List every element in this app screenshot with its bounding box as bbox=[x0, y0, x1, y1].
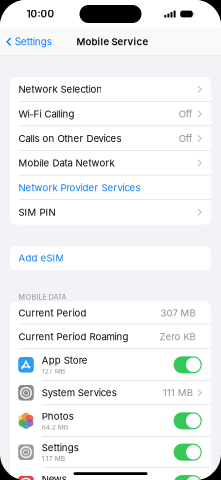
button[interactable]: Network Selection bbox=[10, 77, 211, 102]
button[interactable]: Mobile Data Network bbox=[10, 151, 211, 175]
staticText: Network Provider Services bbox=[18, 182, 140, 193]
staticText: Mobile Service bbox=[76, 36, 148, 47]
staticText: Photos bbox=[42, 410, 74, 422]
staticText: Settings bbox=[42, 442, 79, 453]
button[interactable]: Settings bbox=[0, 28, 52, 55]
button[interactable]: Settings bbox=[10, 436, 211, 468]
staticText: SIM PIN bbox=[18, 206, 55, 218]
staticText: Mobile Data Network bbox=[18, 157, 114, 169]
button[interactable]: Add eSIM bbox=[10, 246, 211, 270]
button[interactable]: Photos bbox=[10, 405, 211, 436]
staticText: Calls on Other Devices bbox=[18, 133, 121, 144]
button[interactable]: Network Provider Services bbox=[10, 175, 211, 200]
button[interactable]: SIM PIN bbox=[10, 200, 211, 225]
button[interactable]: Current Period bbox=[10, 302, 211, 324]
staticText: 64.2 MB bbox=[42, 423, 68, 431]
staticText: Add eSIM bbox=[18, 252, 64, 264]
staticText: 307 MB bbox=[160, 307, 195, 319]
staticText: System Services bbox=[42, 387, 117, 399]
staticText: 10:00 bbox=[26, 8, 54, 20]
staticText: 111 MB bbox=[163, 387, 193, 399]
staticText: Settings bbox=[15, 36, 52, 48]
staticText: Off bbox=[179, 108, 193, 120]
staticText: App Store bbox=[42, 354, 88, 366]
button[interactable]: Wi-Fi Calling bbox=[10, 102, 211, 126]
staticText: MOBILE DATA bbox=[18, 293, 66, 302]
staticText: 1.17 MB bbox=[42, 454, 65, 463]
button[interactable]: Calls on Other Devices bbox=[10, 126, 211, 151]
button[interactable]: News bbox=[10, 468, 211, 480]
staticText: Off bbox=[179, 133, 193, 144]
button[interactable]: Current Period Roaming bbox=[10, 324, 211, 349]
button[interactable]: App Store bbox=[10, 349, 211, 380]
staticText: Current Period Roaming bbox=[18, 331, 128, 342]
staticText: Network Selection bbox=[18, 83, 102, 95]
staticText: 127 MB bbox=[42, 367, 65, 375]
staticText: News bbox=[42, 473, 67, 480]
staticText: Zero KB bbox=[159, 331, 195, 342]
staticText: Wi-Fi Calling bbox=[18, 108, 74, 120]
staticText: Current Period bbox=[18, 307, 86, 319]
button[interactable]: System Services bbox=[10, 380, 211, 405]
